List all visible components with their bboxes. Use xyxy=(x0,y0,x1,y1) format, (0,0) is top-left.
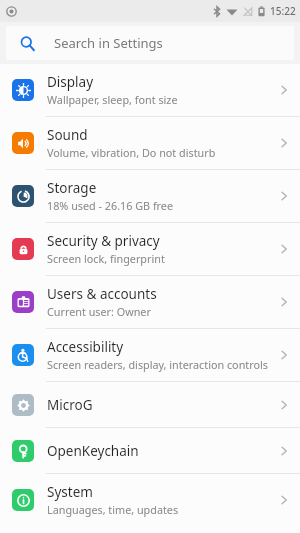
button[interactable]: Users & accounts xyxy=(0,276,300,328)
staticText: Display xyxy=(47,73,94,91)
staticText: Screen lock, fingerprint xyxy=(47,251,165,266)
staticText: Screen readers, display, interaction con… xyxy=(47,357,268,372)
staticText: 15:22 xyxy=(270,4,296,18)
staticText: Wallpaper, sleep, font size xyxy=(47,92,178,107)
button[interactable]: OpenKeychain xyxy=(0,428,300,473)
staticText: Storage xyxy=(47,179,97,197)
button[interactable]: Display xyxy=(0,64,300,116)
staticText: 18% used - 26.16 GB free xyxy=(47,198,174,213)
button[interactable]: Search in Settings xyxy=(6,26,294,60)
staticText: Accessibility xyxy=(47,338,124,356)
button[interactable]: System xyxy=(0,474,300,526)
button[interactable]: Accessibility xyxy=(0,329,300,381)
staticText: Sound xyxy=(47,126,88,144)
staticText: Security & privacy xyxy=(47,232,160,250)
button[interactable]: Sound xyxy=(0,117,300,169)
staticText: Volume, vibration, Do not disturb xyxy=(47,145,216,160)
staticText: System xyxy=(47,483,93,501)
staticText: Users & accounts xyxy=(47,285,157,303)
button[interactable]: Storage xyxy=(0,170,300,222)
button[interactable]: Security & privacy xyxy=(0,223,300,275)
staticText: Current user: Owner xyxy=(47,304,151,319)
staticText: Languages, time, updates xyxy=(47,502,179,517)
staticText: Search in Settings xyxy=(54,34,163,52)
staticText: OpenKeychain xyxy=(47,442,139,460)
staticText: MicroG xyxy=(47,396,93,414)
button[interactable]: MicroG xyxy=(0,382,300,427)
other: Notification xyxy=(6,6,17,17)
